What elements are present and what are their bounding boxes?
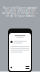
staticText: on all of your devices xyxy=(5,14,34,18)
staticText: Your intelligent assistant xyxy=(3,6,37,10)
staticText: everything in between — xyxy=(2,11,38,15)
staticText: for work, study and for xyxy=(4,9,35,12)
